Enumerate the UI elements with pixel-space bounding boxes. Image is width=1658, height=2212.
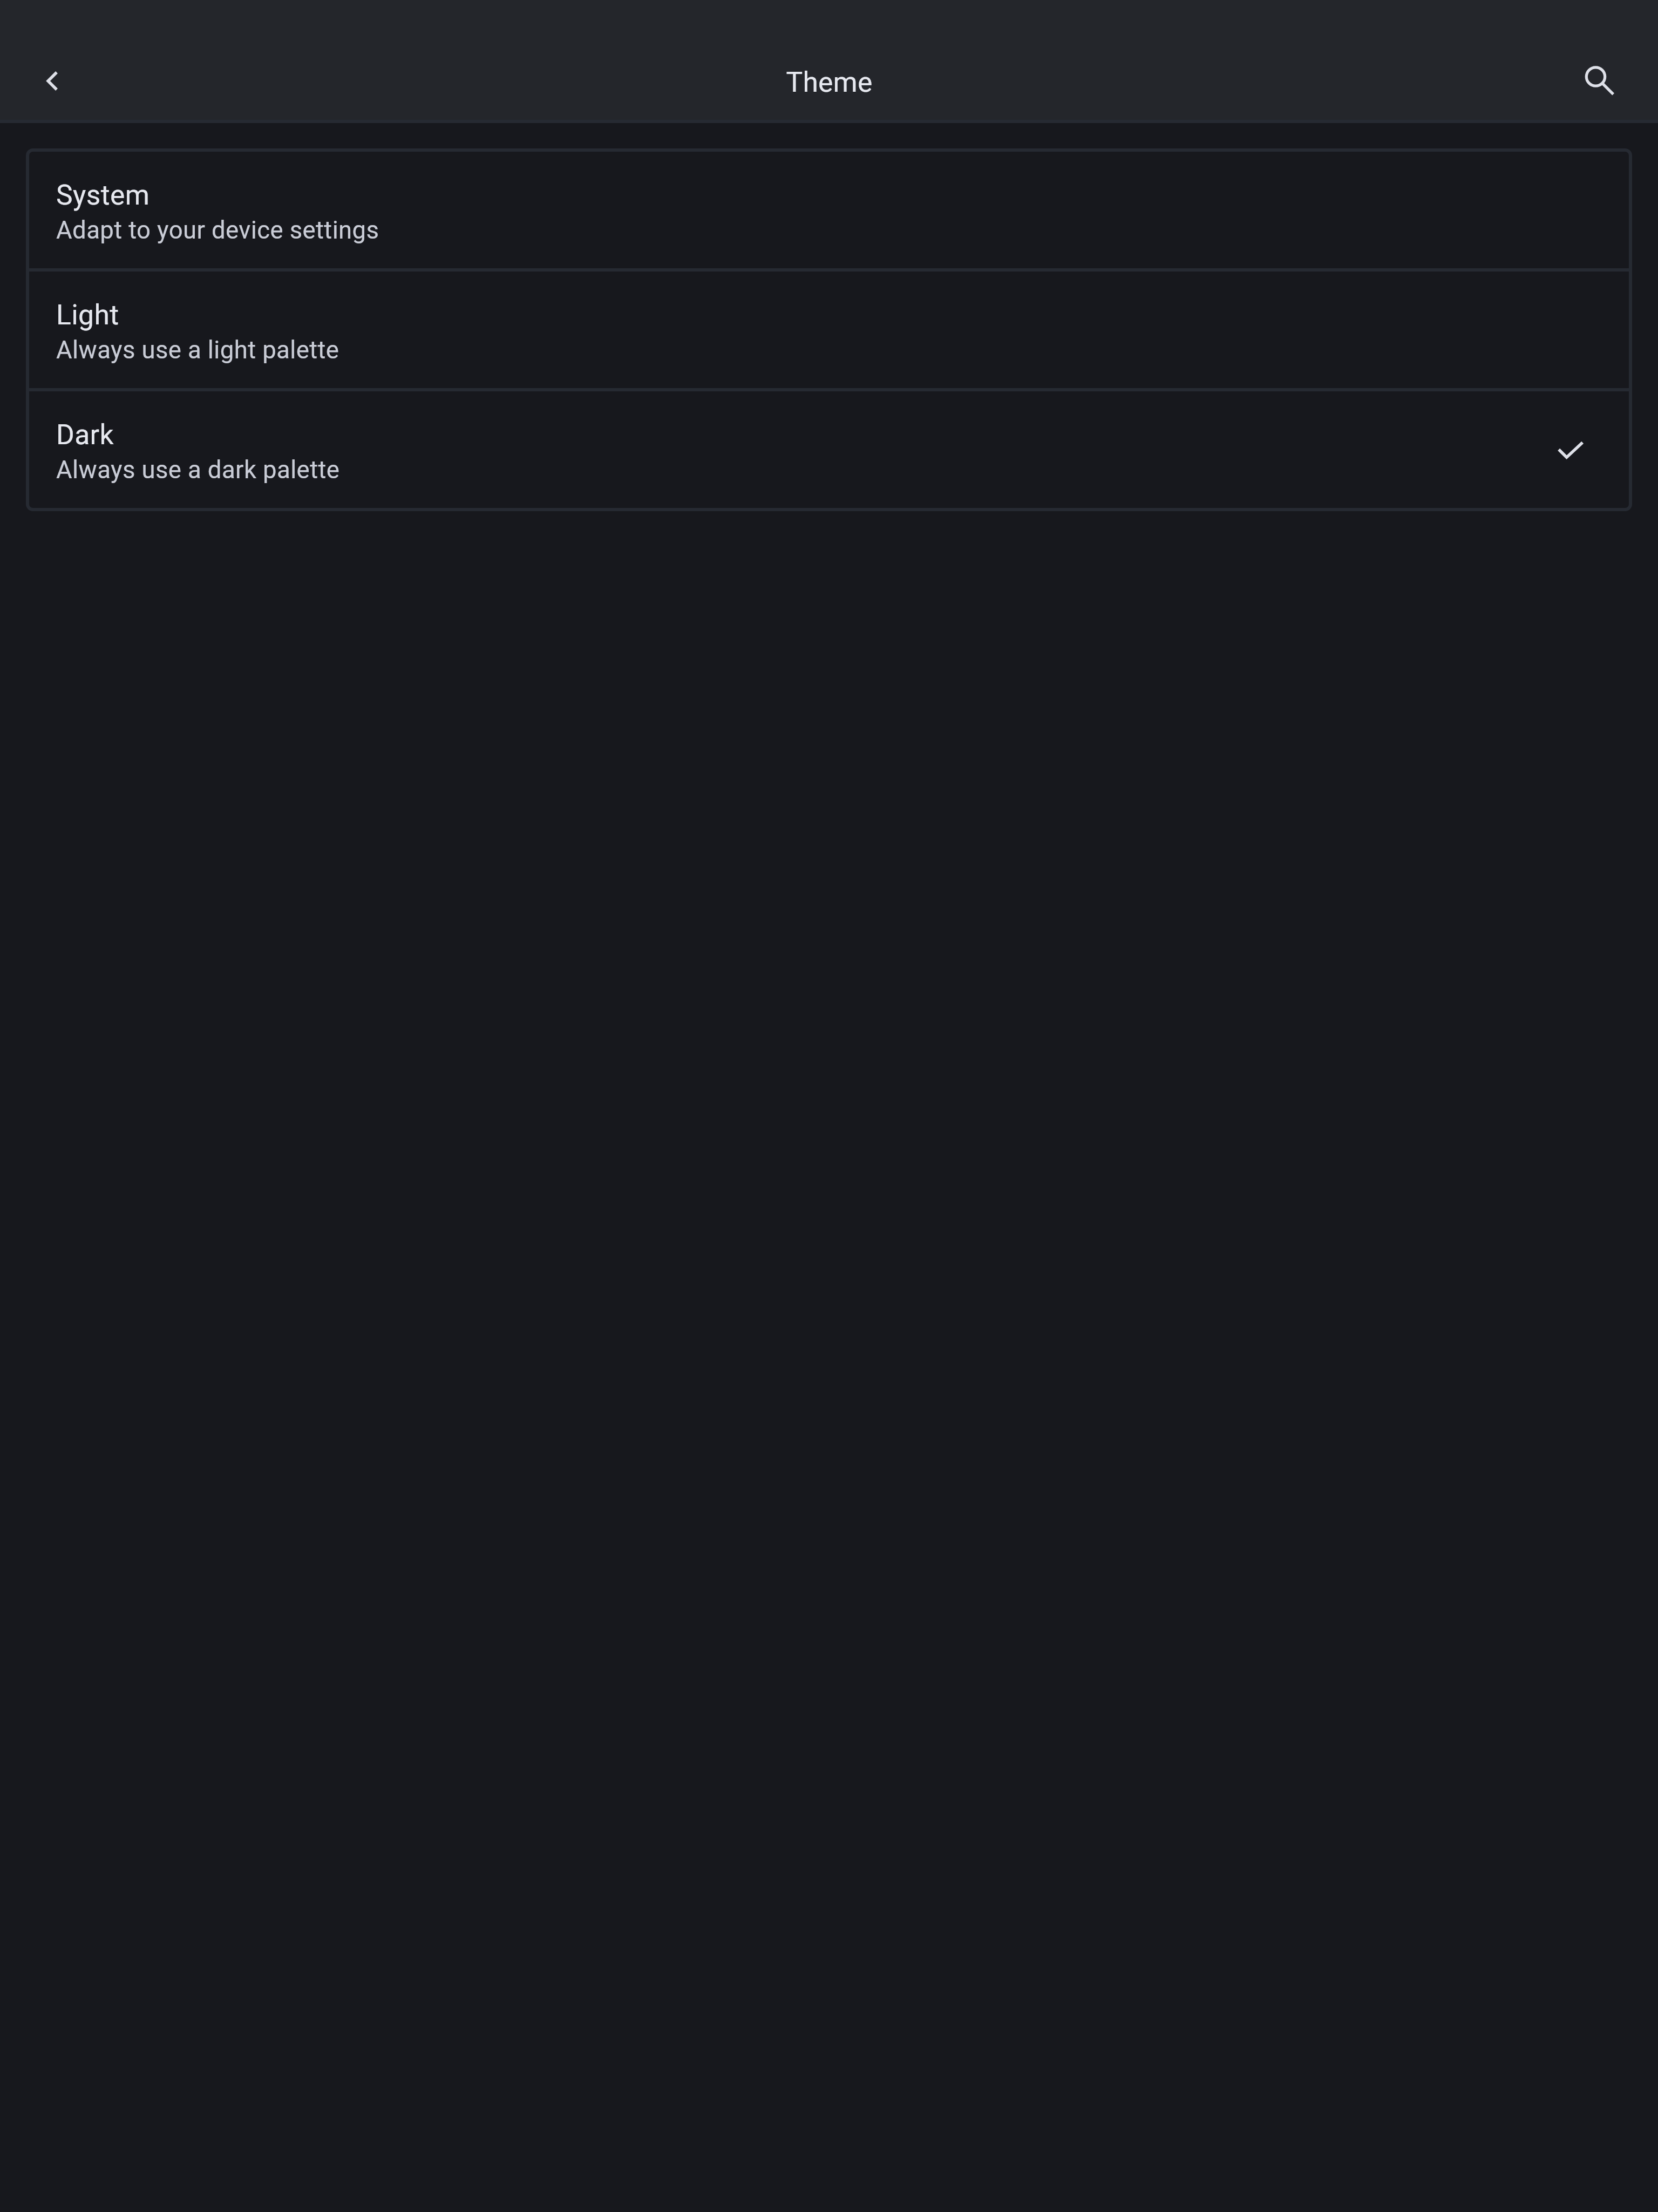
button[interactable]: Search xyxy=(1558,42,1635,120)
button[interactable]: Dark xyxy=(29,391,1629,508)
staticText: Theme xyxy=(786,66,873,98)
staticText: Dark xyxy=(56,418,114,451)
button[interactable]: System xyxy=(29,152,1629,268)
button[interactable]: Light xyxy=(29,272,1629,388)
staticText: Always use a light palette xyxy=(56,336,339,364)
staticText: System xyxy=(56,179,150,211)
staticText: Light xyxy=(56,298,119,331)
staticText: Adapt to your device settings xyxy=(56,216,379,245)
staticText: Always use a dark palette xyxy=(56,456,340,484)
button[interactable]: Back xyxy=(13,42,91,120)
